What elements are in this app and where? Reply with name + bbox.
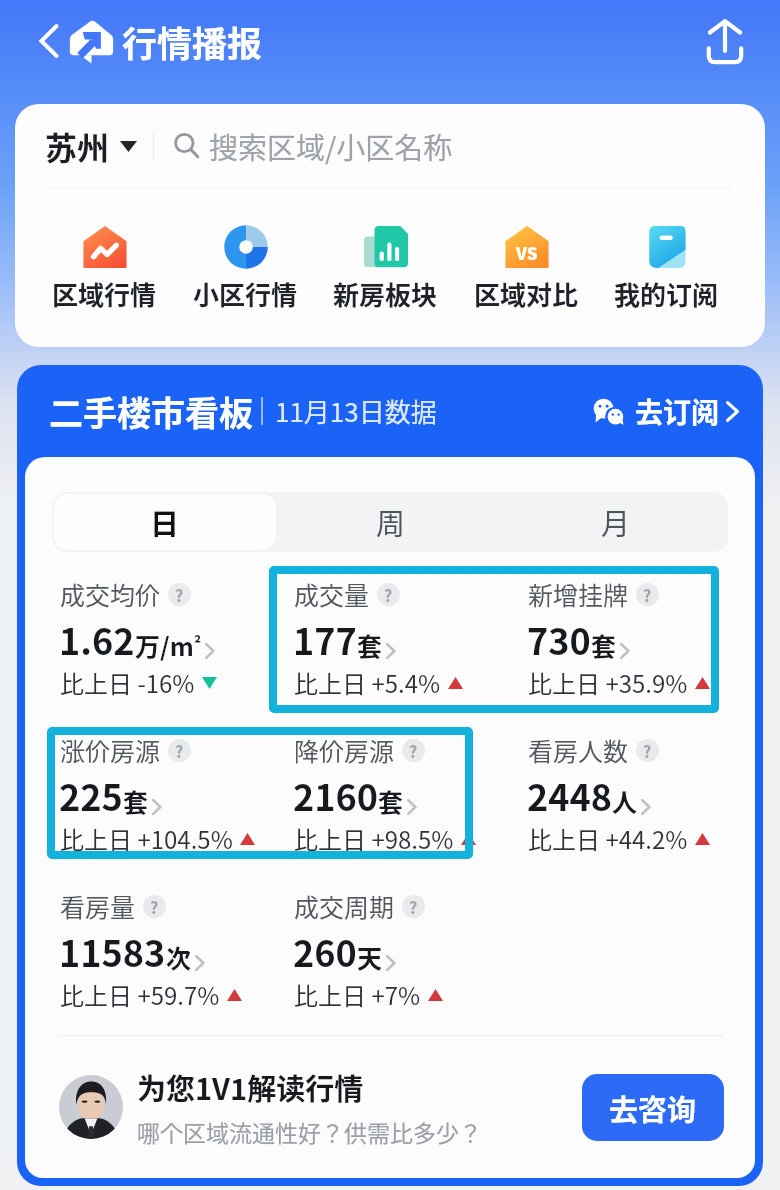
staticText: ? [175,739,184,762]
button[interactable]: 新增挂牌 [507,567,741,723]
button[interactable]: 降价房源 [273,723,507,879]
staticText: 比上日 +35.9% [528,665,688,700]
staticText: 天 [357,939,383,975]
button[interactable]: 成交均价 [39,567,273,723]
button[interactable]: 看房人数 [507,723,741,879]
staticText: 比上日 +7% [294,977,421,1012]
staticText: 2160 [293,769,378,821]
staticText: 11583 [59,925,166,977]
button[interactable]: 小区行情 [193,225,298,313]
staticText: 260 [293,925,357,977]
staticText: 新房板块 [333,275,438,313]
button[interactable]: 搜索区域/小区名称 [154,125,765,167]
staticText: 新增挂牌 [528,576,629,612]
staticText: 行情播报 [122,16,263,67]
button[interactable]: 看房量 [39,879,273,1035]
staticText: 搜索区域/小区名称 [209,125,453,167]
button[interactable]: Share [694,10,756,72]
staticText: 看房量 [60,888,136,924]
staticText: 比上日 +104.5% [60,821,233,856]
staticText: 730 [527,613,591,665]
staticText: 二手楼市看板 [49,387,253,436]
staticText: 人 [612,783,638,819]
staticText: ? [150,895,159,918]
staticText: ? [384,583,393,606]
staticText: 降价房源 [294,732,395,768]
staticText: ? [175,583,184,606]
staticText: 2448 [527,769,612,821]
staticText: 看房人数 [528,732,629,768]
staticText: ? [409,739,418,762]
staticText: 小区行情 [193,275,298,313]
staticText: 次 [166,939,192,975]
staticText: 苏州 [45,123,110,169]
staticText: 套 [123,783,149,819]
staticText: 哪个区域流通性好？供需比多少？ [137,1115,482,1148]
staticText: 去订阅 [635,391,720,432]
button[interactable]: 涨价房源 [39,723,273,879]
button[interactable]: 苏州 [45,123,137,169]
button[interactable]: 区域行情 [52,225,157,313]
staticText: 月 [601,501,631,543]
button[interactable]: 成交量 [273,567,507,723]
staticText: VS [516,240,538,265]
staticText: 11月13日数据 [275,392,437,430]
staticText: 涨价房源 [60,732,161,768]
staticText: ? [409,895,418,918]
staticText: 比上日 +59.7% [60,977,220,1012]
staticText: 套 [378,783,404,819]
button[interactable]: 去咨询 [582,1074,724,1141]
button[interactable]: 我的订阅 [614,225,719,313]
staticText: 区域对比 [474,275,579,313]
staticText: 我的订阅 [614,275,719,313]
button[interactable]: Back [31,23,67,59]
staticText: 比上日 -16% [60,665,195,700]
button[interactable]: 新房板块 [333,225,438,313]
staticText: ? [643,583,652,606]
staticText: ? [643,739,652,762]
staticText: 套 [591,627,617,663]
button[interactable]: 去订阅 [593,391,739,432]
staticText: ² [194,630,202,655]
button[interactable]: VS [474,225,579,313]
staticText: 225 [59,769,123,821]
button[interactable]: 周 [280,494,501,550]
staticText: 成交量 [294,576,370,612]
staticText: 区域行情 [52,275,157,313]
staticText: 日 [150,501,180,543]
button[interactable]: 月 [505,494,726,550]
staticText: 周 [376,501,406,543]
staticText: 成交均价 [60,576,161,612]
staticText: 比上日 +98.5% [294,821,454,856]
staticText: 套 [357,627,383,663]
staticText: 177 [293,613,357,665]
button[interactable]: 日 [54,494,276,550]
staticText: 1.62 [59,613,135,665]
staticText: 去咨询 [609,1087,697,1129]
staticText: 万/m [135,627,194,663]
button[interactable]: 成交周期 [273,879,507,1035]
staticText: 为您1V1解读行情 [137,1066,364,1108]
staticText: 比上日 +5.4% [294,665,441,700]
staticText: 比上日 +44.2% [528,821,688,856]
staticText: 成交周期 [294,888,395,924]
